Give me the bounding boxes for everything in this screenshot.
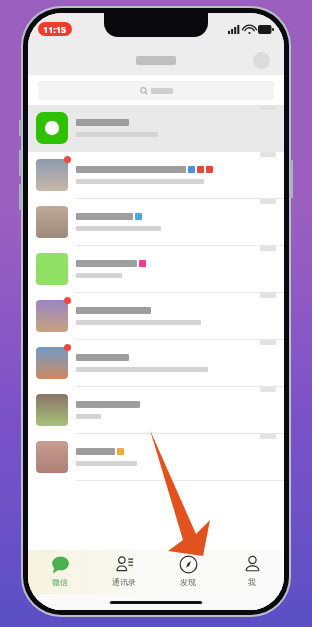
staticText: 微信 [52, 577, 68, 587]
button[interactable]: 发现 [156, 550, 220, 594]
button[interactable] [28, 340, 284, 387]
button[interactable]: Search [38, 81, 274, 100]
button[interactable] [28, 199, 284, 246]
button[interactable]: 通讯录 [92, 550, 156, 594]
staticText: 通讯录 [112, 577, 136, 587]
staticText: jingyan.baidu.com [196, 585, 257, 595]
staticText: 我 [248, 577, 256, 587]
button[interactable]: 我 [220, 550, 284, 594]
button[interactable] [28, 387, 284, 434]
staticText: Baidu [196, 566, 233, 584]
button[interactable] [28, 434, 284, 481]
button[interactable] [28, 246, 284, 293]
staticText: 11:15 [43, 23, 67, 35]
button[interactable] [28, 293, 284, 340]
staticText: 发现 [180, 577, 196, 587]
button[interactable] [28, 152, 284, 199]
button[interactable]: 微信 [28, 550, 92, 594]
button[interactable] [28, 105, 284, 152]
button[interactable]: Profile [253, 52, 270, 69]
